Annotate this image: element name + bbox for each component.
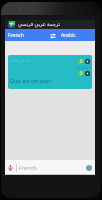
button[interactable]: ما هو بلدك [8,55,92,89]
staticText: French [8,32,24,39]
button[interactable]: Translate [83,160,95,175]
button[interactable]: Arabic [58,29,95,41]
staticText: ما بلدك [76,65,89,70]
button[interactable]: Voice input [5,160,16,175]
button[interactable]: Listen [85,59,90,64]
button[interactable]: Copy text [78,59,83,64]
button[interactable]: French [19,160,83,175]
button[interactable]: French [5,29,47,41]
staticText: ترجمة عربي فرنسي [18,21,60,28]
button[interactable]: Swap languages [47,30,58,41]
staticText: French [19,164,37,171]
button[interactable]: Listen [85,71,90,76]
button[interactable]: Copy text [78,71,83,76]
staticText: ما هو بلدك [10,57,30,63]
button[interactable]: App icon [8,21,15,28]
staticText: Quel est ton pays [10,78,51,85]
staticText: Arabic [61,32,76,39]
